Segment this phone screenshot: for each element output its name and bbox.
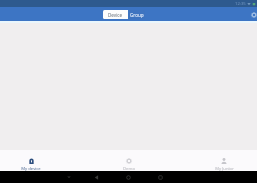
staticText: My device: [21, 166, 41, 171]
button[interactable]: Recent apps: [150, 171, 170, 183]
staticText: Device: [108, 12, 123, 18]
button[interactable]: My device: [3, 150, 59, 171]
button[interactable]: Home: [118, 171, 138, 183]
button[interactable]: Settings: [247, 8, 257, 21]
button[interactable]: Demo: [101, 150, 157, 171]
button[interactable]: Group: [128, 10, 145, 19]
button[interactable]: Device: [103, 10, 128, 19]
staticText: 12:35: [235, 1, 246, 7]
staticText: Group: [130, 12, 144, 18]
staticText: My Junior: [215, 166, 234, 171]
button[interactable]: Hide keyboard: [59, 171, 79, 183]
button[interactable]: Back: [86, 171, 106, 183]
button[interactable]: My Junior: [196, 150, 252, 171]
staticText: Demo: [123, 166, 135, 171]
